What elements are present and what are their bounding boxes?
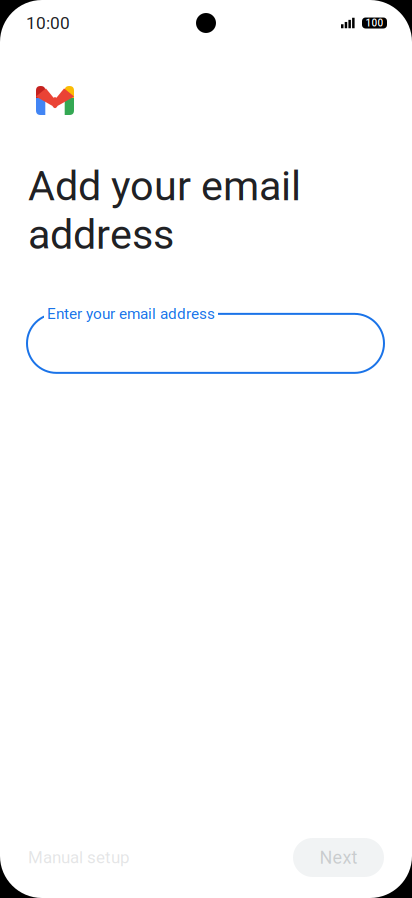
staticText: Enter your email address (47, 305, 215, 323)
staticText: 10:00 (26, 13, 70, 33)
staticText: Manual setup (28, 848, 130, 867)
button[interactable]: Next (293, 838, 384, 877)
button[interactable]: Manual setup (16, 836, 142, 878)
staticText: Add your email (28, 162, 301, 210)
staticText: Next (319, 847, 357, 868)
staticText: address (28, 210, 174, 259)
staticText: 100 (365, 17, 383, 29)
